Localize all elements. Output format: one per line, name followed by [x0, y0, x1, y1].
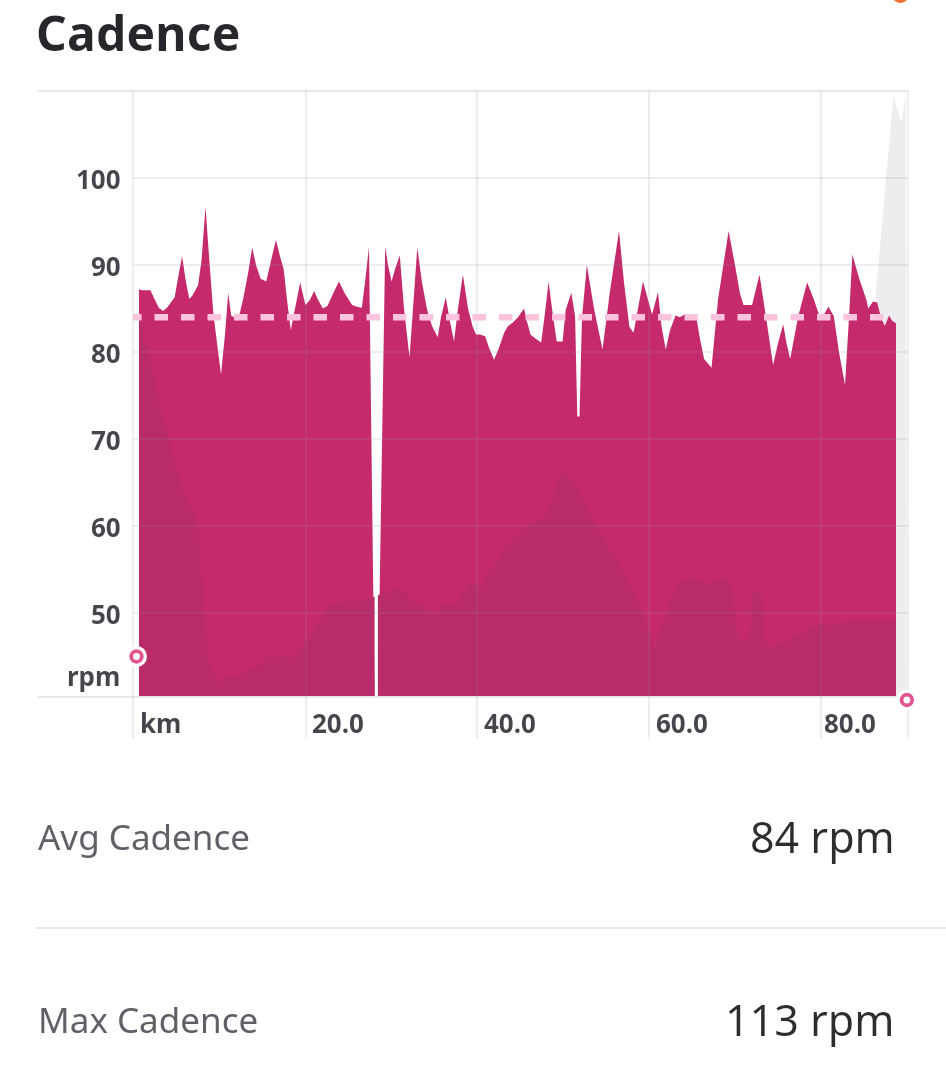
staticText: 90: [91, 248, 121, 283]
staticText: 70: [91, 422, 121, 457]
staticText: Cadence: [36, 0, 241, 65]
staticText: 80.0: [824, 705, 876, 740]
staticText: 50: [91, 596, 121, 631]
staticText: 84 rpm: [750, 807, 895, 866]
staticText: 60: [91, 509, 121, 544]
staticText: Avg Cadence: [38, 813, 250, 861]
staticText: 20.0: [312, 705, 364, 740]
button[interactable]: Avg Cadence: [0, 746, 946, 927]
staticText: 40.0: [484, 705, 536, 740]
staticText: Max Cadence: [38, 996, 259, 1044]
staticText: km: [140, 705, 182, 740]
staticText: 60.0: [656, 705, 708, 740]
staticText: 113 rpm: [725, 990, 895, 1049]
button[interactable]: Activity map pin: [884, 0, 917, 11]
staticText: 100: [76, 161, 121, 196]
staticText: rpm: [67, 658, 121, 693]
staticText: 80: [91, 335, 121, 370]
button[interactable]: Max Cadence: [0, 929, 946, 1080]
